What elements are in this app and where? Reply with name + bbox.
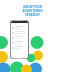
staticText: ADVERTISING [22, 9, 43, 13]
staticText: STRATEGY [25, 13, 40, 17]
button[interactable]: Phone preview [10, 20, 29, 59]
staticText: GROW YOUR [23, 5, 42, 9]
